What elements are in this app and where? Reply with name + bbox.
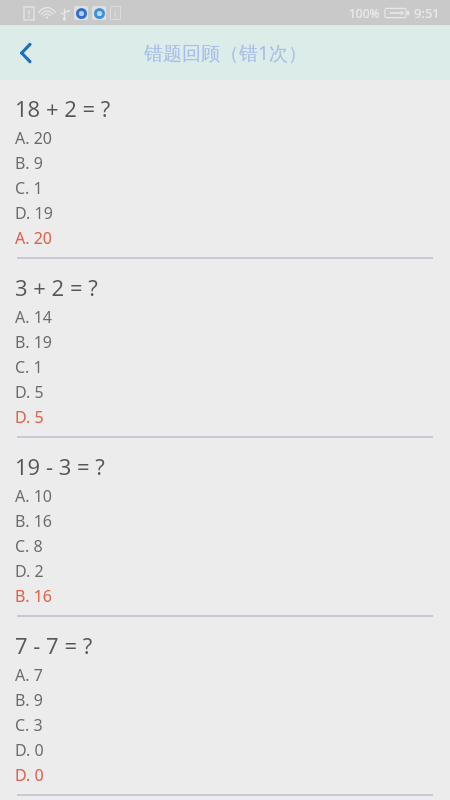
staticText: A. 10 bbox=[15, 485, 52, 507]
staticText: D. 5 bbox=[15, 406, 44, 428]
staticText: D. 2 bbox=[15, 560, 44, 582]
staticText: C. 8 bbox=[15, 535, 43, 557]
staticText: C. 1 bbox=[15, 177, 43, 199]
staticText: C. 1 bbox=[15, 356, 43, 378]
staticText: B. 19 bbox=[15, 331, 52, 353]
staticText: D. 19 bbox=[15, 202, 53, 224]
button[interactable]: 19 - 3 = ? bbox=[0, 438, 450, 617]
staticText: 错题回顾（错1次） bbox=[144, 40, 307, 66]
staticText: i bbox=[114, 8, 117, 19]
staticText: A. 7 bbox=[15, 664, 43, 686]
staticText: B. 16 bbox=[15, 510, 52, 532]
button[interactable]: 3 + 2 = ? bbox=[0, 259, 450, 438]
staticText: B. 9 bbox=[15, 152, 43, 174]
staticText: 3 + 2 = ? bbox=[15, 272, 98, 302]
staticText: 7 - 7 = ? bbox=[15, 630, 93, 660]
staticText: A. 14 bbox=[15, 306, 52, 328]
staticText: 9:51 bbox=[414, 4, 440, 22]
staticText: A. 20 bbox=[15, 227, 52, 249]
staticText: B. 9 bbox=[15, 689, 43, 711]
button[interactable]: 18 + 2 = ? bbox=[0, 80, 450, 259]
staticText: D. 0 bbox=[15, 764, 44, 786]
button[interactable]: Back bbox=[0, 27, 52, 79]
button[interactable]: 7 - 7 = ? bbox=[0, 617, 450, 796]
staticText: D. 5 bbox=[15, 381, 44, 403]
staticText: 18 + 2 = ? bbox=[15, 93, 111, 123]
staticText: D. 0 bbox=[15, 739, 44, 761]
staticText: B. 16 bbox=[15, 585, 52, 607]
staticText: C. 3 bbox=[15, 714, 43, 736]
staticText: A. 20 bbox=[15, 127, 52, 149]
staticText: 19 - 3 = ? bbox=[15, 451, 105, 481]
staticText: 100% bbox=[349, 5, 380, 21]
